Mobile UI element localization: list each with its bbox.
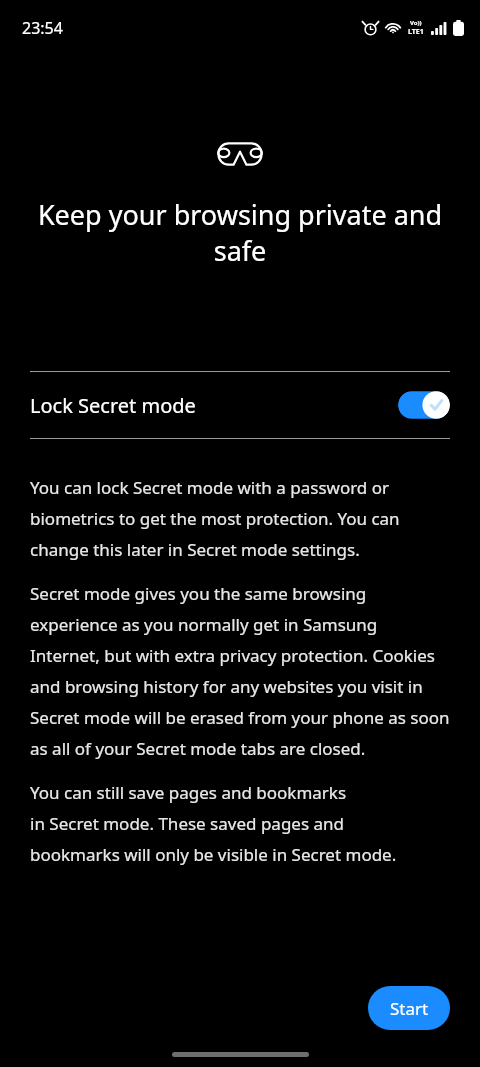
staticText: LTE1 [408,27,424,37]
other: Secret mode mask [217,140,263,168]
staticText: You can lock Secret mode with a password… [30,476,450,561]
staticText: Keep your browsing private and safe [28,196,452,269]
staticText: 23:54 [22,17,63,39]
button[interactable]: Lock Secret mode toggle, on [398,390,450,420]
staticText: Lock Secret mode [30,392,398,419]
staticText: Start [390,997,429,1020]
button[interactable]: Lock Secret mode [0,372,480,438]
button[interactable]: Start [368,986,450,1030]
staticText: Secret mode gives you the same browsing … [30,582,450,760]
staticText: You can still save pages and bookmarks i… [30,781,397,866]
staticText: Vo)) [410,19,422,27]
